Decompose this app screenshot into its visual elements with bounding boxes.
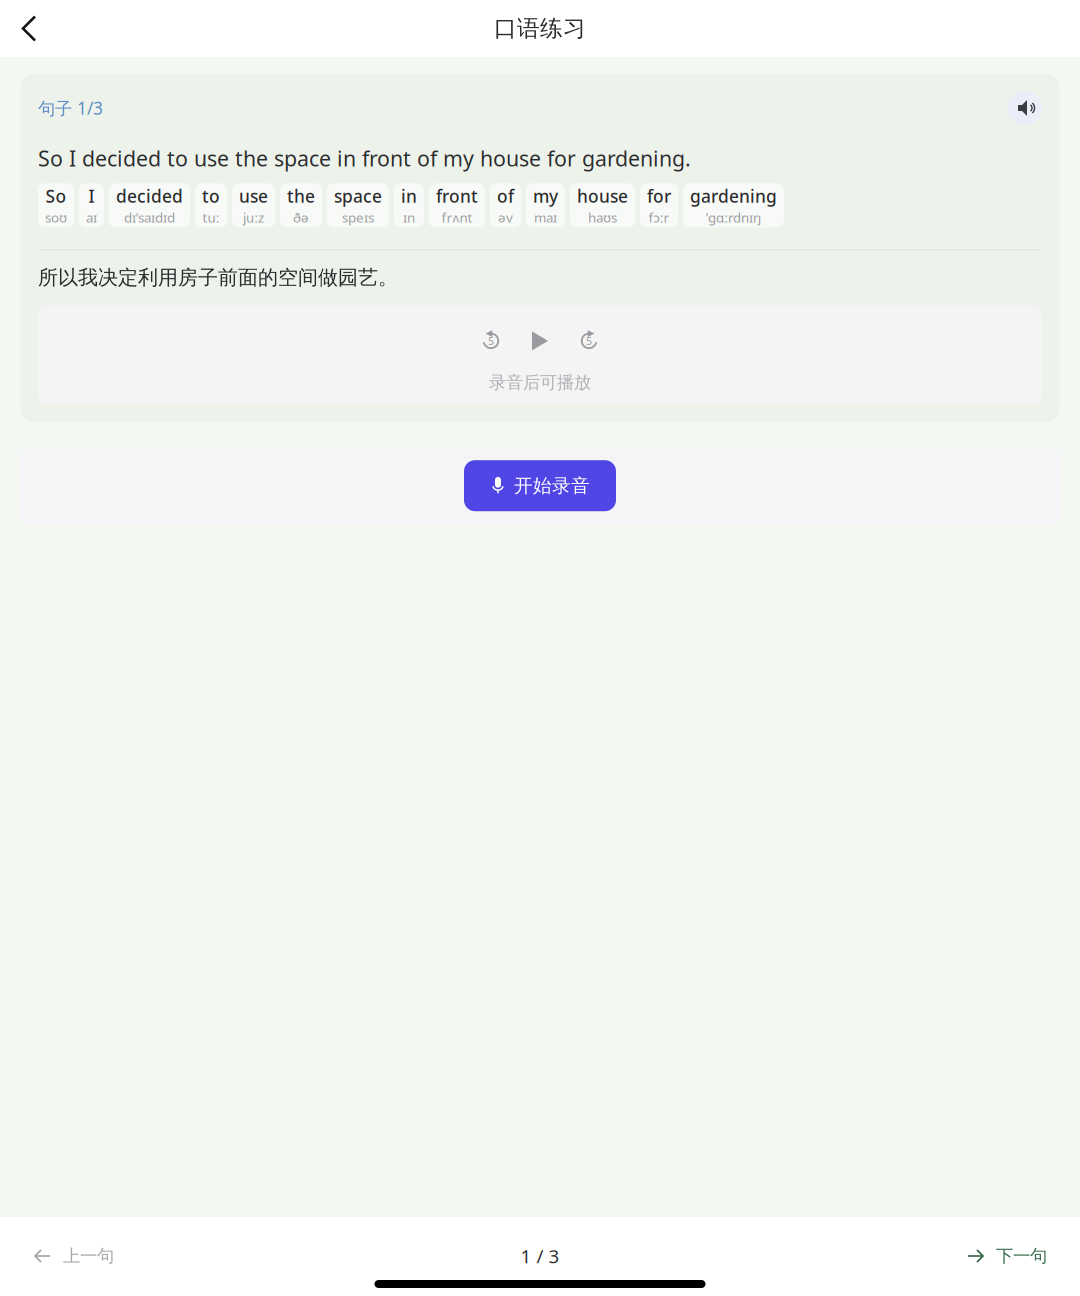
staticText: 1 / 3 (520, 1244, 559, 1268)
staticText: dɪˈsaɪdɪd (124, 208, 175, 226)
staticText: ɪn (403, 208, 415, 226)
staticText: for (647, 184, 671, 207)
staticText: my (533, 184, 558, 207)
button[interactable]: space (327, 183, 389, 227)
staticText: gardening (690, 184, 777, 207)
button[interactable]: in (394, 183, 424, 227)
button[interactable]: gardening (683, 183, 784, 227)
staticText: tuː (202, 208, 219, 226)
button[interactable]: 上一句 (13, 1233, 134, 1279)
staticText: frʌnt (441, 208, 472, 226)
button[interactable]: use (232, 183, 275, 227)
staticText: I (88, 184, 94, 207)
button[interactable]: Forward 5 seconds (579, 330, 599, 352)
button[interactable]: for (640, 183, 678, 227)
button[interactable]: Play audio (1008, 91, 1042, 125)
button[interactable]: house (570, 183, 635, 227)
button[interactable]: Back (8, 6, 52, 50)
staticText: juːz (243, 208, 264, 226)
staticText: 录音后可播放 (489, 372, 591, 393)
staticText: ˈɡɑːrdnɪŋ (706, 208, 761, 226)
staticText: 开始录音 (514, 474, 590, 497)
staticText: in (401, 184, 417, 207)
staticText: 下一句 (996, 1245, 1047, 1267)
button[interactable]: to (195, 183, 227, 227)
staticText: So (45, 184, 66, 207)
staticText: of (497, 184, 514, 207)
staticText: space (334, 184, 382, 207)
staticText: the (287, 184, 315, 207)
staticText: haʊs (588, 208, 617, 226)
button[interactable]: I (79, 183, 104, 227)
button[interactable]: of (490, 183, 521, 227)
staticText: soʊ (45, 208, 67, 226)
staticText: decided (116, 184, 183, 207)
staticText: 上一句 (63, 1245, 114, 1267)
staticText: house (577, 184, 628, 207)
staticText: 5 (586, 334, 592, 348)
staticText: əv (498, 208, 513, 226)
staticText: aɪ (86, 208, 97, 226)
staticText: ðə (293, 208, 309, 226)
staticText: maɪ (534, 208, 557, 226)
button[interactable]: Back 5 seconds (481, 330, 501, 352)
staticText: 5 (488, 334, 494, 348)
staticText: 口语练习 (494, 15, 586, 42)
staticText: fɔːr (648, 208, 669, 226)
button[interactable]: front (429, 183, 485, 227)
button[interactable]: decided (109, 183, 190, 227)
button[interactable]: Play (531, 331, 549, 350)
staticText: 句子 1/3 (38, 96, 103, 119)
staticText: use (239, 184, 268, 207)
button[interactable]: my (526, 183, 565, 227)
button[interactable]: 下一句 (946, 1233, 1067, 1279)
button[interactable]: the (280, 183, 322, 227)
staticText: speɪs (342, 208, 374, 226)
staticText: to (202, 184, 220, 207)
staticText: 所以我决定利用房子前面的空间做园艺。 (38, 265, 398, 290)
button[interactable]: 开始录音 (464, 460, 616, 511)
staticText: front (436, 184, 478, 207)
staticText: So I decided to use the space in front o… (38, 144, 691, 172)
button[interactable]: So (38, 183, 74, 227)
